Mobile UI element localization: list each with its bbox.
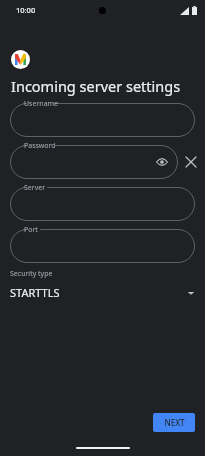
button[interactable]: Username xyxy=(10,103,195,137)
button[interactable]: Server xyxy=(10,187,195,221)
staticText: Security type xyxy=(10,269,53,279)
button[interactable]: Port xyxy=(10,229,195,263)
staticText: 10:00 xyxy=(16,5,36,15)
staticText: NEXT xyxy=(164,417,185,428)
button[interactable]: Clear password xyxy=(180,151,202,173)
staticText: Port xyxy=(24,225,38,235)
staticText: STARTTLS xyxy=(10,285,60,300)
button[interactable]: Security type xyxy=(0,269,205,300)
staticText: Server xyxy=(24,183,46,193)
button[interactable]: NEXT xyxy=(153,413,195,432)
button[interactable]: Show password xyxy=(154,154,170,170)
staticText: Incoming server settings xyxy=(11,76,181,96)
staticText: Username xyxy=(24,99,59,109)
button[interactable]: Password xyxy=(10,145,178,179)
staticText: Password xyxy=(24,141,56,151)
